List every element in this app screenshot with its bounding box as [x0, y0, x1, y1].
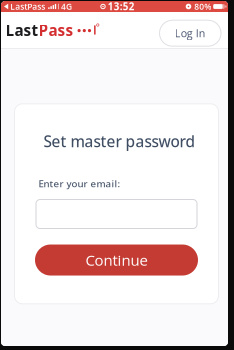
staticText: Last: [5, 20, 38, 40]
button[interactable]: Continue: [35, 244, 198, 275]
staticText: Set master password: [43, 131, 195, 152]
staticText: 4G: [61, 1, 72, 12]
staticText: 80%: [194, 1, 211, 12]
staticText: Log In: [175, 26, 206, 40]
staticText: LastPass: [10, 1, 45, 12]
staticText: Enter your email:: [38, 177, 120, 190]
staticText: Pass: [38, 20, 73, 40]
staticText: Continue: [85, 250, 147, 270]
button[interactable]: Log In: [159, 20, 221, 46]
staticText: 13:52: [108, 0, 135, 13]
